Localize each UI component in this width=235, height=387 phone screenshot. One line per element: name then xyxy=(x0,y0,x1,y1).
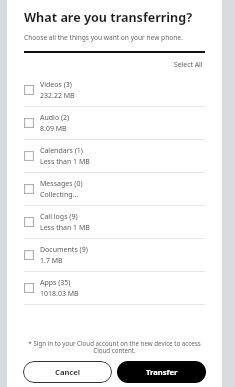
staticText: 1018.03 MB xyxy=(40,289,79,299)
staticText: Calendars (1) xyxy=(40,146,83,156)
staticText: * Sign in to your Cloud account on the n… xyxy=(27,339,202,355)
button[interactable]: Select Messages (0) xyxy=(7,173,222,205)
button[interactable]: Transfer xyxy=(117,361,206,383)
staticText: 232.22 MB xyxy=(40,91,75,101)
other: Select Call logs (9) xyxy=(24,217,34,227)
staticText: 8.09 MB xyxy=(40,124,67,134)
staticText: What are you transferring? xyxy=(24,9,193,26)
staticText: Messages (0) xyxy=(40,179,83,189)
button[interactable]: Select Apps (35) xyxy=(7,272,222,304)
staticText: Collecting... xyxy=(40,190,79,200)
other: Select Messages (0) xyxy=(24,184,34,194)
staticText: Choose all the things you want on your n… xyxy=(24,33,183,42)
staticText: Less than 1 MB xyxy=(40,223,90,233)
button[interactable]: Select All xyxy=(172,58,205,71)
other: Select Documents (9) xyxy=(24,250,34,260)
other: Select Audio (2) xyxy=(24,118,34,128)
staticText: Apps (35) xyxy=(40,278,71,288)
button[interactable]: Select Audio (2) xyxy=(7,107,222,139)
staticText: Audio (2) xyxy=(40,113,70,123)
other: Select Calendars (1) xyxy=(24,151,34,161)
button[interactable]: Select Documents (9) xyxy=(7,239,222,271)
staticText: Transfer xyxy=(146,367,178,377)
other: Select Videos (3) xyxy=(24,85,34,95)
staticText: Cancel xyxy=(55,367,81,377)
other: Select Apps (35) xyxy=(24,283,34,293)
button[interactable]: Cancel xyxy=(23,361,112,383)
button[interactable]: Select Call logs (9) xyxy=(7,206,222,238)
button[interactable]: Select Calendars (1) xyxy=(7,140,222,172)
button[interactable]: Select Videos (3) xyxy=(7,74,222,106)
staticText: Videos (3) xyxy=(40,80,72,90)
staticText: Documents (9) xyxy=(40,245,88,255)
staticText: Call logs (9) xyxy=(40,212,78,222)
staticText: 1.7 MB xyxy=(40,256,63,266)
staticText: Less than 1 MB xyxy=(40,157,90,167)
